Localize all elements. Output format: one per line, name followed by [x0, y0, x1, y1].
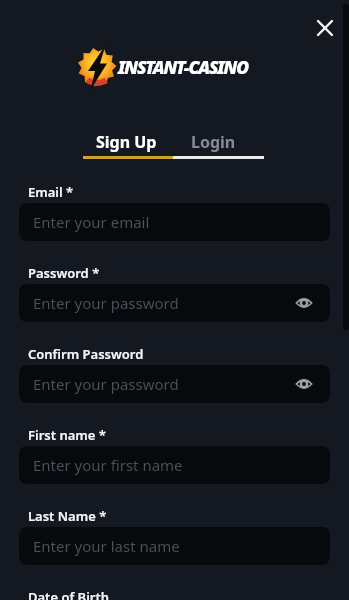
staticText: Email *: [28, 183, 74, 201]
staticText: Last Name *: [28, 507, 107, 525]
button[interactable]: Enter your password: [19, 365, 330, 403]
staticText: Enter your first name: [33, 455, 183, 475]
button[interactable]: Enter your first name: [19, 446, 330, 484]
staticText: INSTANT-CASINO: [118, 55, 248, 79]
staticText: Enter your password: [33, 293, 179, 313]
button[interactable]: Login: [168, 128, 258, 156]
staticText: Enter your password: [33, 374, 179, 394]
button[interactable]: [296, 296, 312, 310]
staticText: Enter your last name: [33, 536, 180, 556]
button[interactable]: [310, 13, 340, 43]
staticText: Password *: [28, 264, 100, 282]
staticText: Sign Up: [96, 131, 157, 153]
button[interactable]: Sign Up: [81, 128, 171, 156]
staticText: Date of Birth: [28, 588, 110, 600]
button[interactable]: [296, 377, 312, 391]
staticText: First name *: [28, 426, 106, 444]
staticText: Enter your email: [33, 212, 150, 232]
button[interactable]: Enter your last name: [19, 527, 330, 565]
button[interactable]: Enter your password: [19, 284, 330, 322]
staticText: Confirm Password: [28, 345, 144, 363]
staticText: Login: [191, 131, 236, 153]
button[interactable]: Enter your email: [19, 203, 330, 241]
